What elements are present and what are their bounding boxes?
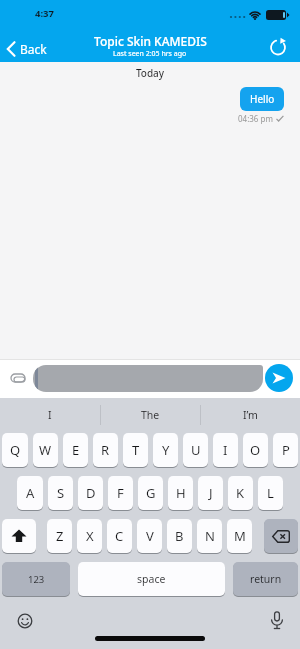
button[interactable]: N <box>197 519 222 554</box>
button[interactable]: L <box>258 476 283 511</box>
staticText: F <box>117 484 124 502</box>
button[interactable]: G <box>138 476 163 511</box>
button[interactable]: H <box>168 476 193 511</box>
staticText: M <box>234 527 246 545</box>
staticText: W <box>39 441 52 459</box>
staticText: Y <box>162 441 170 459</box>
staticText: B <box>175 527 184 545</box>
staticText: 123 <box>28 573 45 586</box>
staticText: Last seen 2:05 hrs ago <box>113 49 187 59</box>
staticText: Today <box>0 66 300 80</box>
button[interactable]: C <box>107 519 132 554</box>
staticText: The <box>141 408 160 422</box>
button[interactable] <box>264 519 298 554</box>
staticText: U <box>191 441 201 459</box>
staticText: G <box>146 484 156 502</box>
button[interactable]: D <box>78 476 103 511</box>
staticText: 4:37 <box>35 7 54 20</box>
button[interactable] <box>33 365 263 392</box>
button[interactable] <box>268 37 289 58</box>
staticText: N <box>205 527 215 545</box>
button[interactable]: Y <box>153 433 178 468</box>
button[interactable]: S <box>48 476 73 511</box>
button[interactable]: P <box>273 433 298 468</box>
button[interactable]: Q <box>2 433 28 468</box>
button[interactable]: B <box>167 519 192 554</box>
staticText: K <box>236 484 245 502</box>
staticText: I’m <box>243 408 258 422</box>
staticText: O <box>250 441 261 459</box>
staticText: I <box>223 441 228 459</box>
button[interactable]: X <box>77 519 102 554</box>
staticText: A <box>26 484 35 502</box>
button[interactable]: Z <box>47 519 72 554</box>
staticText: 04:36 pm <box>238 113 273 124</box>
button[interactable]: V <box>137 519 162 554</box>
button[interactable]: W <box>33 433 58 468</box>
button[interactable]: K <box>228 476 253 511</box>
button[interactable]: I’m <box>201 398 300 432</box>
button[interactable]: M <box>227 519 252 554</box>
staticText: T <box>132 441 140 459</box>
staticText: H <box>176 484 186 502</box>
button[interactable]: T <box>123 433 148 468</box>
staticText: S <box>57 484 65 502</box>
staticText: R <box>101 441 110 459</box>
button[interactable]: Hello <box>240 87 284 111</box>
button[interactable] <box>2 519 36 554</box>
button[interactable]: return <box>233 562 298 597</box>
button[interactable]: Back <box>5 40 48 58</box>
button[interactable]: space <box>78 562 225 597</box>
staticText: E <box>72 441 80 459</box>
staticText: D <box>86 484 96 502</box>
button[interactable]: J <box>198 476 223 511</box>
button[interactable] <box>270 611 284 631</box>
button[interactable]: E <box>63 433 88 468</box>
staticText: Back <box>20 41 47 57</box>
button[interactable]: The <box>101 398 200 432</box>
staticText: L <box>267 484 274 502</box>
button[interactable]: A <box>17 476 43 511</box>
staticText: return <box>250 572 282 586</box>
staticText: Hello <box>250 92 275 106</box>
staticText: Q <box>10 441 21 459</box>
staticText: Z <box>56 527 64 545</box>
button[interactable] <box>17 613 33 629</box>
button[interactable]: O <box>243 433 268 468</box>
button[interactable]: U <box>183 433 208 468</box>
button[interactable] <box>265 364 293 392</box>
staticText: I <box>48 408 52 422</box>
staticText: P <box>282 441 290 459</box>
button[interactable]: R <box>93 433 118 468</box>
button[interactable]: F <box>108 476 133 511</box>
button[interactable]: 123 <box>2 562 70 597</box>
staticText: X <box>86 527 94 545</box>
button[interactable]: I <box>213 433 238 468</box>
button[interactable]: I <box>0 398 100 432</box>
button[interactable] <box>9 371 29 387</box>
staticText: Topic Skin KAMEDIS <box>94 33 207 49</box>
staticText: J <box>209 484 213 502</box>
staticText: C <box>115 527 124 545</box>
staticText: space <box>137 572 166 586</box>
staticText: V <box>146 527 154 545</box>
